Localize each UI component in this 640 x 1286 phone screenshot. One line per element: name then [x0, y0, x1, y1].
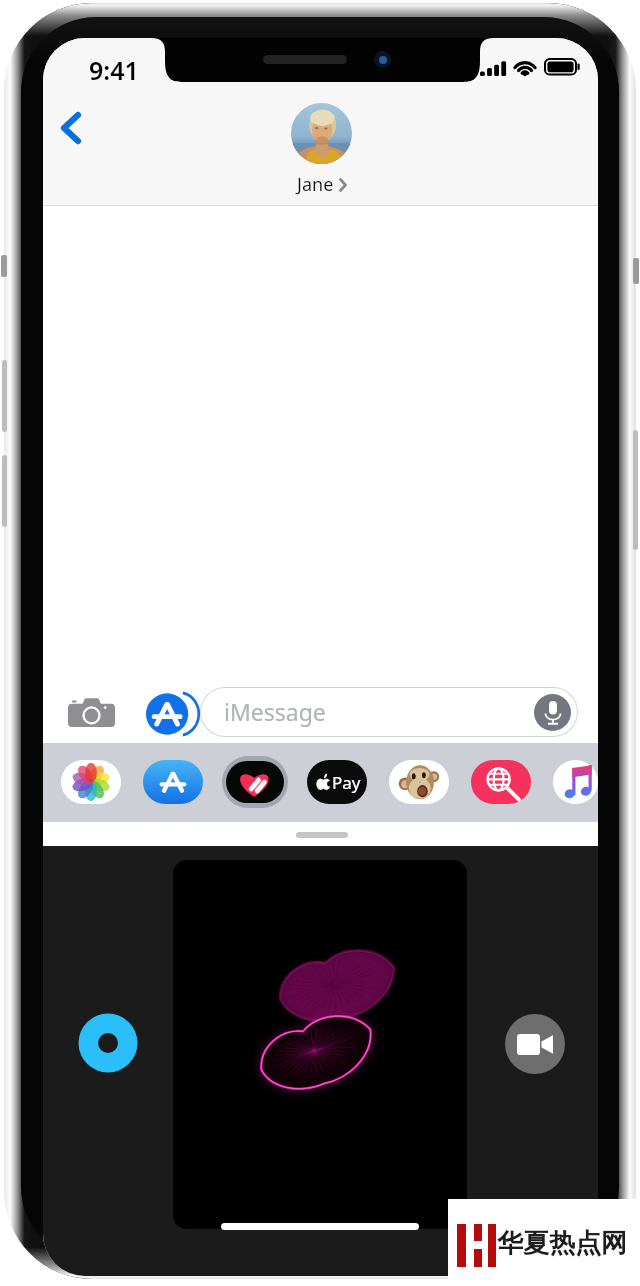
staticText: Jane: [297, 172, 334, 197]
button[interactable]: Pay: [307, 760, 367, 804]
button[interactable]: [389, 760, 449, 804]
staticText: 9:41: [89, 53, 139, 87]
button[interactable]: Back: [47, 98, 99, 152]
button[interactable]: [225, 760, 285, 804]
staticText: 华夏热点网: [497, 1227, 627, 1260]
button[interactable]: Color picker: [78, 1013, 138, 1073]
button[interactable]: Record video: [505, 1014, 565, 1074]
button[interactable]: Jane: [291, 103, 352, 197]
button[interactable]: App Store: [141, 690, 199, 734]
button[interactable]: [143, 760, 203, 804]
button[interactable]: iMessage: [200, 687, 578, 737]
button[interactable]: [471, 760, 531, 804]
button[interactable]: Dictate: [534, 694, 571, 731]
button[interactable]: [553, 760, 598, 804]
button[interactable]: [61, 760, 121, 804]
staticText: iMessage: [224, 696, 326, 727]
button[interactable]: Drag handle: [296, 832, 348, 838]
button[interactable]: Camera: [60, 690, 122, 734]
staticText: Pay: [332, 771, 361, 794]
